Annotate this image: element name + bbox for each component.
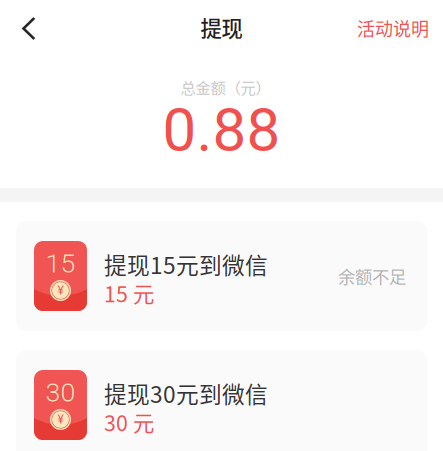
staticText: 余额不足: [338, 263, 406, 289]
staticText: ¥: [57, 412, 63, 427]
button[interactable]: 活动说明: [345, 0, 443, 51]
staticText: ¥: [57, 283, 63, 298]
staticText: 30: [45, 377, 75, 408]
staticText: 15 元: [104, 278, 154, 308]
button[interactable]: 15: [16, 221, 427, 331]
staticText: 活动说明: [357, 15, 429, 41]
staticText: 0.88: [162, 95, 280, 165]
staticText: 提现15元到微信: [104, 248, 268, 280]
staticText: 提现: [200, 12, 242, 43]
staticText: 30 元: [104, 407, 154, 437]
staticText: 总金额（元）: [180, 76, 270, 98]
button[interactable]: Back: [0, 0, 50, 51]
button[interactable]: 30: [16, 350, 427, 451]
staticText: 15: [45, 248, 75, 279]
staticText: 提现30元到微信: [104, 377, 268, 409]
